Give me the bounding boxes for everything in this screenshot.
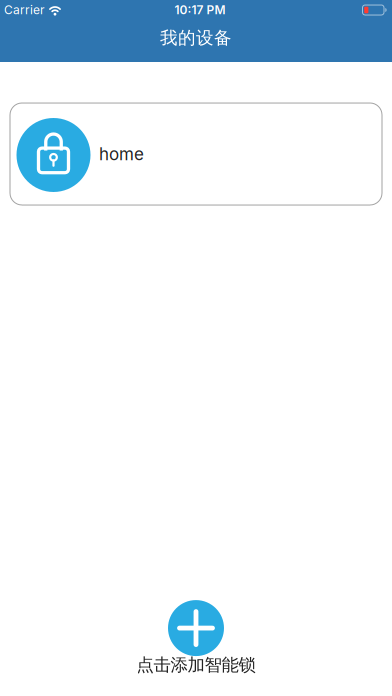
button[interactable]: home: [10, 103, 382, 205]
staticText: home: [99, 144, 144, 164]
staticText: 10:17 PM: [174, 3, 225, 17]
staticText: 点击添加智能锁: [136, 654, 255, 676]
staticText: Carrier: [4, 3, 45, 17]
button[interactable]: 点击添加智能锁: [136, 600, 255, 678]
staticText: 我的设备: [160, 27, 232, 49]
